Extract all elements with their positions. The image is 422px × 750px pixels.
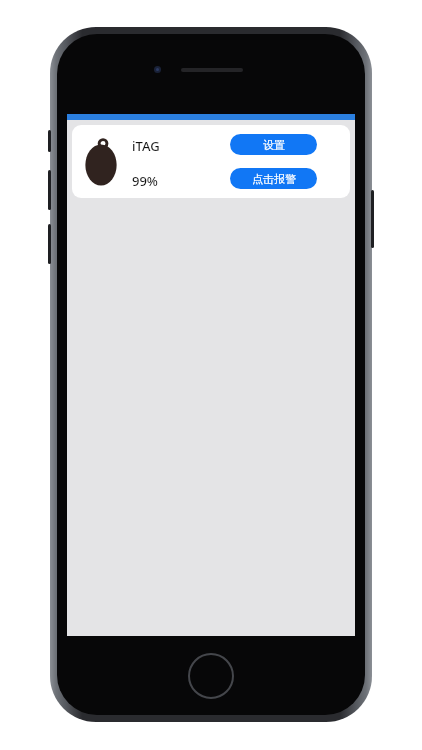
staticText: iTAG bbox=[132, 137, 160, 155]
staticText: 设置 bbox=[263, 138, 285, 152]
button[interactable]: iTAG bbox=[72, 125, 350, 198]
staticText: 点击报警 bbox=[252, 172, 296, 186]
button[interactable]: 设置 bbox=[230, 134, 317, 155]
staticText: 99% bbox=[132, 172, 158, 190]
button[interactable]: 点击报警 bbox=[230, 168, 317, 189]
